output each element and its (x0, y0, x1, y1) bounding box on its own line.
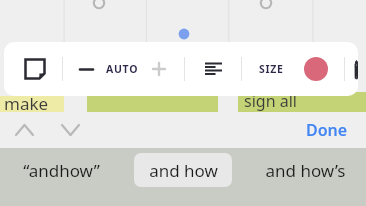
staticText: AUTO (106, 62, 139, 76)
button[interactable]: Previous (6, 112, 42, 148)
button[interactable]: Decrease (73, 52, 99, 86)
button[interactable]: Delete (355, 51, 358, 87)
button[interactable]: Text alignment (197, 51, 229, 87)
button[interactable]: and how’s (244, 153, 366, 187)
button[interactable]: Increase (146, 52, 172, 86)
staticText: and how (149, 159, 218, 182)
button[interactable]: AUTO (103, 56, 142, 82)
staticText: “andhow” (23, 159, 100, 182)
staticText: make (4, 92, 49, 115)
button[interactable]: Done (294, 112, 360, 148)
staticText: and how’s (265, 159, 346, 182)
staticText: SIZE (259, 62, 284, 76)
button[interactable]: Colour (299, 52, 333, 86)
button[interactable]: and how (134, 153, 232, 187)
button[interactable]: Note style (18, 52, 52, 86)
button[interactable]: Next (52, 112, 88, 148)
staticText: Done (306, 119, 348, 141)
button[interactable]: SIZE (256, 56, 287, 82)
button[interactable]: “andhow” (0, 153, 122, 187)
staticText: sign all (244, 90, 297, 112)
